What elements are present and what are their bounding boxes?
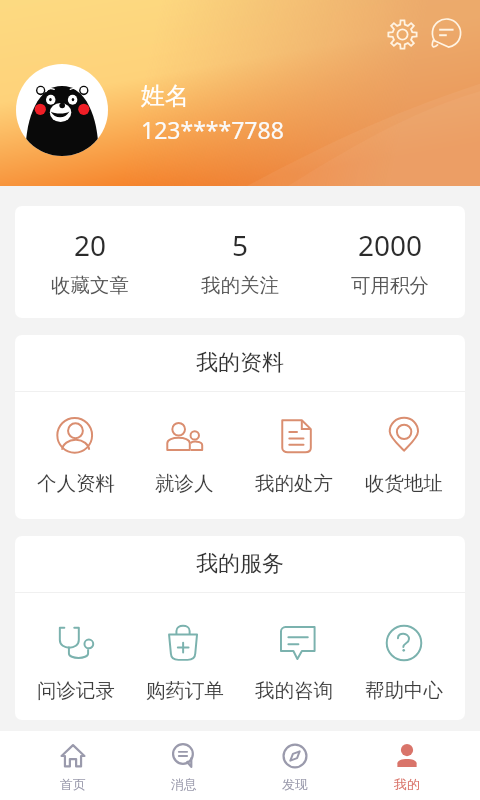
staticText: 帮助中心: [365, 678, 443, 703]
button[interactable]: 我的: [351, 731, 463, 800]
button[interactable]: 就诊人: [130, 392, 239, 519]
button[interactable]: 收货地址: [349, 392, 459, 519]
staticText: 我的资料: [196, 349, 284, 377]
staticText: 收藏文章: [51, 273, 129, 298]
staticText: 我的处方: [255, 471, 333, 496]
button[interactable]: 发现: [239, 731, 351, 800]
staticText: 5: [232, 226, 249, 264]
staticText: 首页: [60, 776, 86, 792]
staticText: 我的咨询: [255, 678, 333, 703]
staticText: 我的关注: [201, 273, 279, 298]
button[interactable]: Messages: [426, 14, 466, 54]
staticText: 个人资料: [37, 471, 115, 496]
staticText: 购药订单: [146, 678, 224, 703]
button[interactable]: 首页: [17, 731, 128, 800]
staticText: 123****7788: [141, 114, 284, 145]
button[interactable]: 2000: [315, 206, 465, 318]
button[interactable]: 我的处方: [239, 392, 349, 519]
button[interactable]: Profile photo: [16, 64, 108, 156]
button[interactable]: Settings: [382, 14, 422, 54]
staticText: 我的: [394, 776, 420, 792]
button[interactable]: 购药订单: [130, 593, 239, 720]
button[interactable]: 个人资料: [21, 392, 130, 519]
staticText: 姓名: [141, 81, 189, 111]
staticText: 收货地址: [365, 471, 443, 496]
staticText: 20: [74, 226, 107, 264]
staticText: 2000: [358, 226, 423, 264]
button[interactable]: 消息: [128, 731, 239, 800]
button[interactable]: 5: [165, 206, 315, 318]
button[interactable]: 20: [15, 206, 165, 318]
staticText: 可用积分: [351, 273, 429, 298]
button[interactable]: 我的咨询: [239, 593, 349, 720]
staticText: 问诊记录: [37, 678, 115, 703]
staticText: 就诊人: [155, 471, 214, 496]
staticText: 我的服务: [196, 550, 284, 578]
staticText: 消息: [171, 776, 197, 792]
button[interactable]: 问诊记录: [21, 593, 130, 720]
staticText: 发现: [282, 776, 308, 792]
button[interactable]: 帮助中心: [349, 593, 459, 720]
